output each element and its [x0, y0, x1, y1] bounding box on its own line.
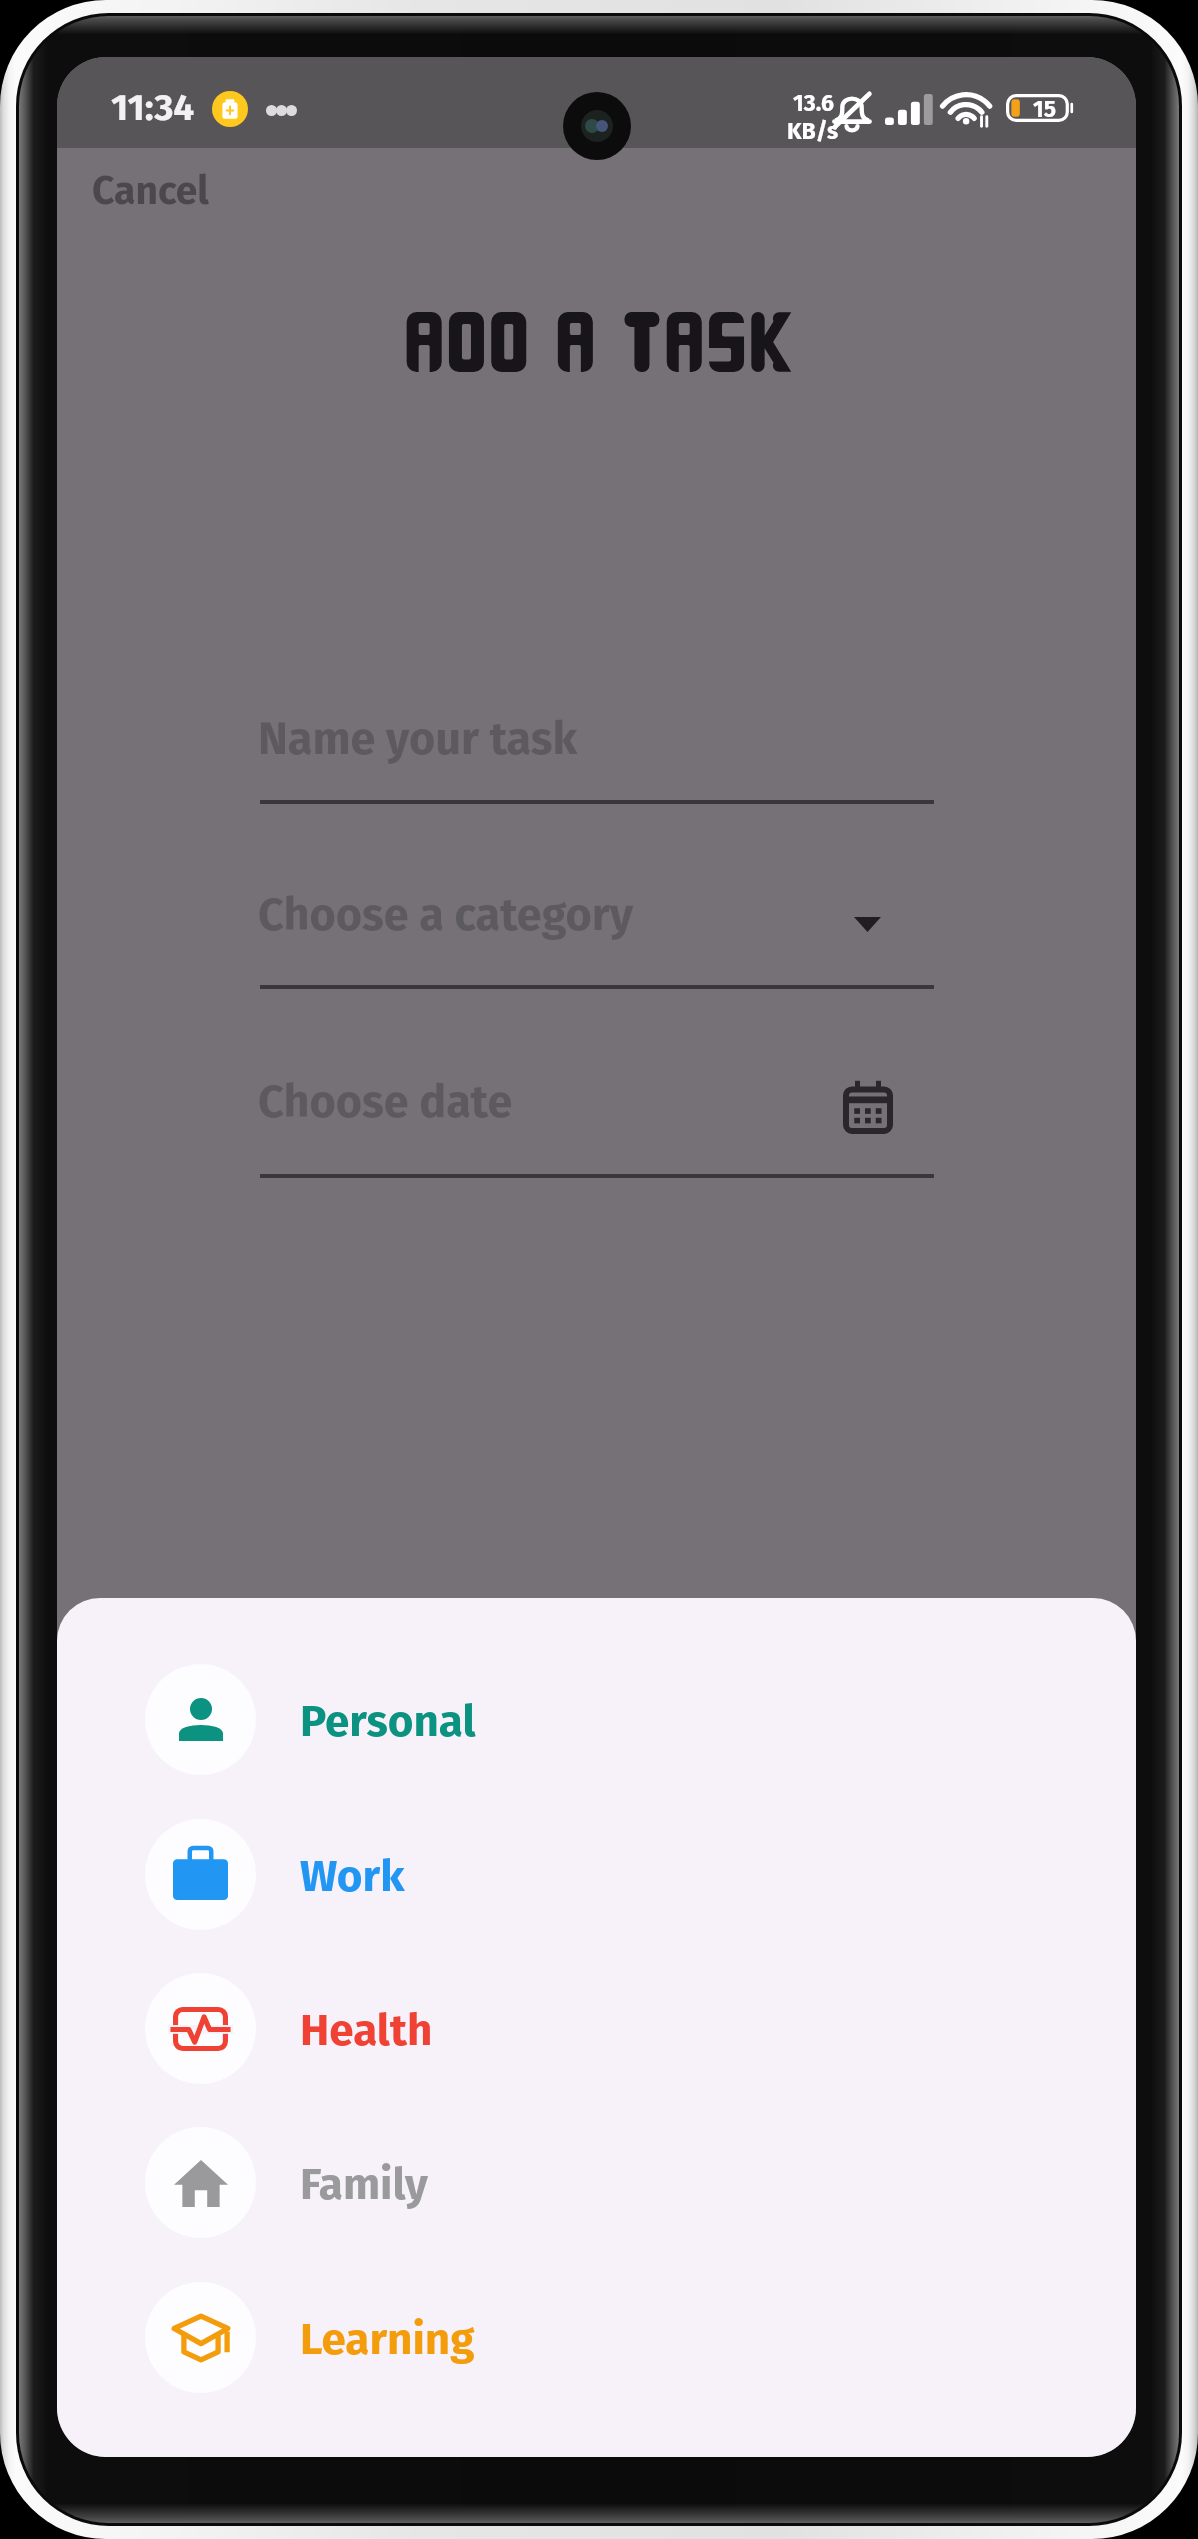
other: Choose a category	[841, 904, 894, 945]
staticText: Learning	[300, 2313, 475, 2366]
button[interactable]: Family	[57, 2105, 1136, 2259]
staticText: Personal	[300, 1695, 476, 1748]
button[interactable]: Health	[57, 1951, 1136, 2105]
staticText: Work	[300, 1850, 405, 1903]
staticText: Health	[300, 2004, 433, 2057]
button[interactable]: Choose a category	[260, 865, 934, 989]
button[interactable]: Learning	[57, 2260, 1136, 2414]
staticText: 13.6	[793, 89, 834, 117]
button[interactable]: Cancel	[72, 152, 229, 231]
staticText: Choose date	[258, 1075, 513, 1129]
staticText: Choose a category	[258, 888, 634, 942]
staticText: KB/s	[787, 117, 839, 145]
button[interactable]: Work	[57, 1797, 1136, 1951]
other: Pick a date	[833, 1068, 903, 1144]
button[interactable]: Name your task	[260, 680, 934, 804]
button[interactable]: Personal	[57, 1642, 1136, 1796]
button[interactable]: Choose date	[260, 1054, 934, 1178]
staticText: 15	[1033, 95, 1056, 123]
staticText: Name your task	[258, 712, 578, 766]
staticText: 11:34	[111, 85, 195, 129]
staticText: Family	[300, 2158, 428, 2211]
staticText: Cancel	[92, 168, 209, 215]
